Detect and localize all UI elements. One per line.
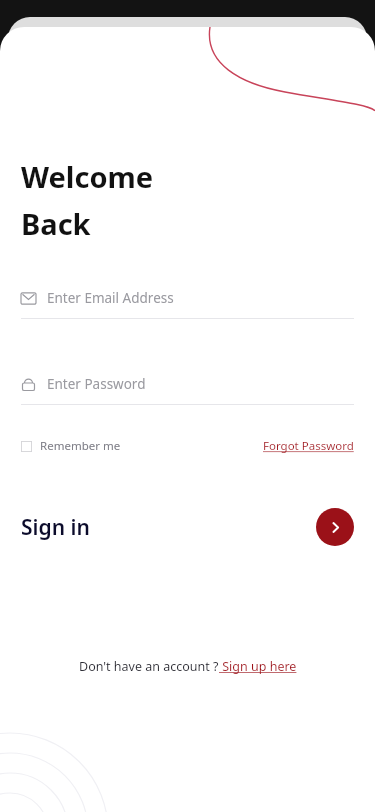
staticText: Don't have an account ?	[79, 658, 219, 675]
staticText: Welcome	[21, 157, 154, 196]
staticText: Sign up here	[219, 658, 297, 675]
button[interactable]: Sign in	[316, 508, 354, 546]
staticText: Back	[21, 204, 91, 243]
staticText: Forgot Password	[263, 438, 354, 454]
button[interactable]: Forgot Password	[263, 438, 354, 454]
button[interactable]: Sign up here	[219, 658, 297, 675]
button[interactable]: Sign in	[21, 513, 90, 542]
staticText: Enter Email Address	[47, 289, 174, 307]
button[interactable]: Remember me	[21, 436, 121, 456]
staticText: Sign in	[21, 513, 90, 542]
button[interactable]: Enter Password	[21, 375, 354, 405]
staticText: Remember me	[40, 438, 121, 454]
button[interactable]: Enter Email Address	[21, 289, 354, 319]
staticText: Enter Password	[47, 375, 146, 393]
